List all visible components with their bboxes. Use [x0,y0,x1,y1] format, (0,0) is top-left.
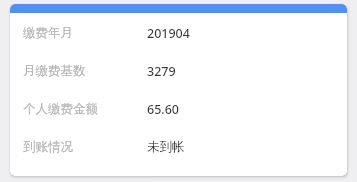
staticText: 个人缴费金额 [23,101,98,117]
staticText: 3279 [147,63,176,80]
staticText: 201904 [147,25,190,42]
staticText: 到账情况 [23,139,73,155]
staticText: 月缴费基数 [23,63,86,79]
button[interactable]: 个人缴费金额 [10,90,347,128]
staticText: 65.60 [147,101,180,118]
button[interactable]: 到账情况 [10,128,347,166]
staticText: 未到帐 [147,139,185,155]
staticText: 缴费年月 [23,25,73,41]
button[interactable]: 缴费年月 [10,14,347,52]
button[interactable]: 月缴费基数 [10,52,347,90]
